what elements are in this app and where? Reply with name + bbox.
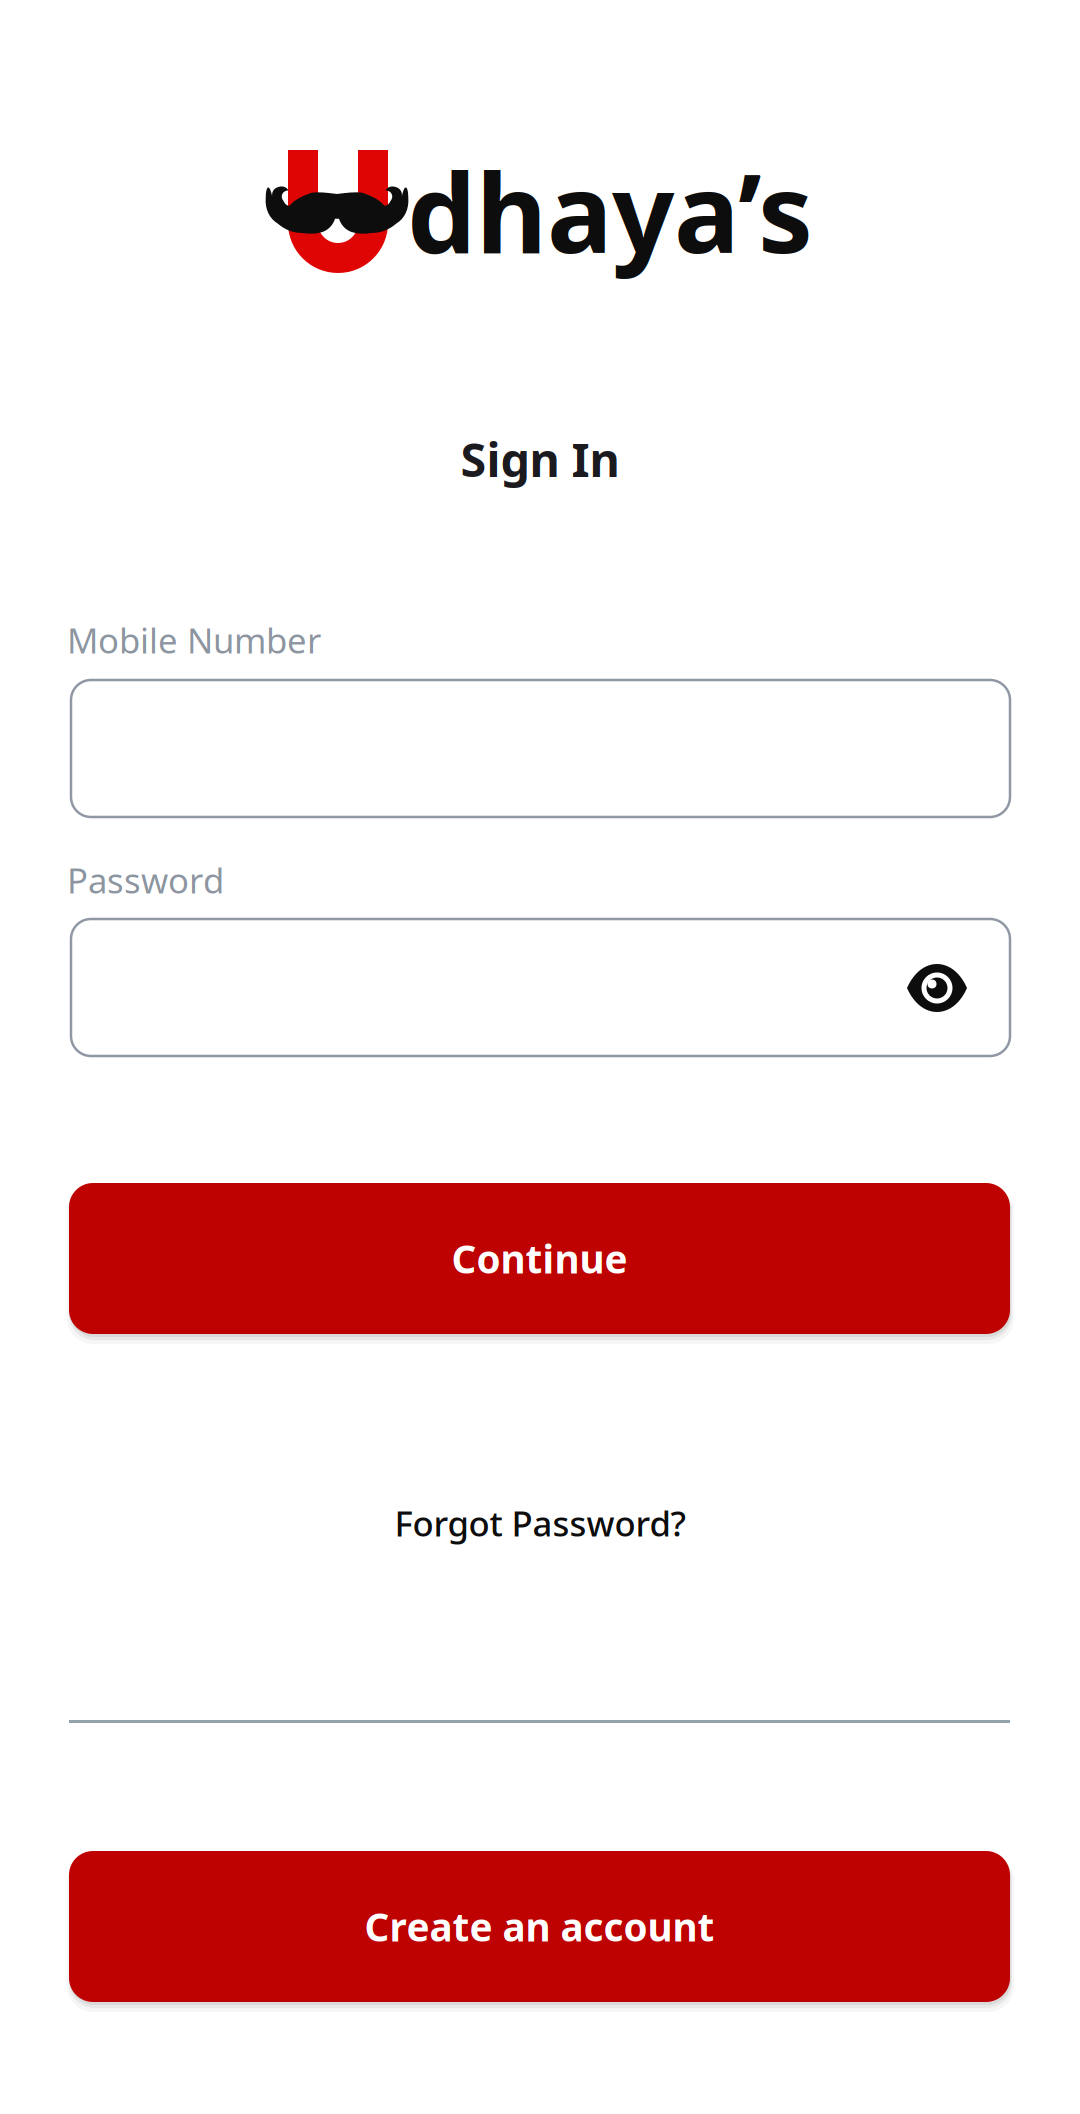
staticText: dhaya’s (407, 138, 813, 283)
staticText: Sign In (460, 428, 619, 490)
staticText: Forgot Password? (394, 1500, 685, 1546)
staticText: Password (67, 857, 224, 903)
button[interactable]: Continue (69, 1183, 1010, 1334)
button[interactable]: Create an account (69, 1851, 1010, 2002)
staticText: Create an account (364, 1901, 714, 1952)
staticText: Continue (451, 1233, 627, 1284)
button[interactable]: Show password (886, 944, 988, 1032)
staticText: Mobile Number (67, 617, 321, 663)
button[interactable]: Forgot Password? (390, 1494, 690, 1552)
